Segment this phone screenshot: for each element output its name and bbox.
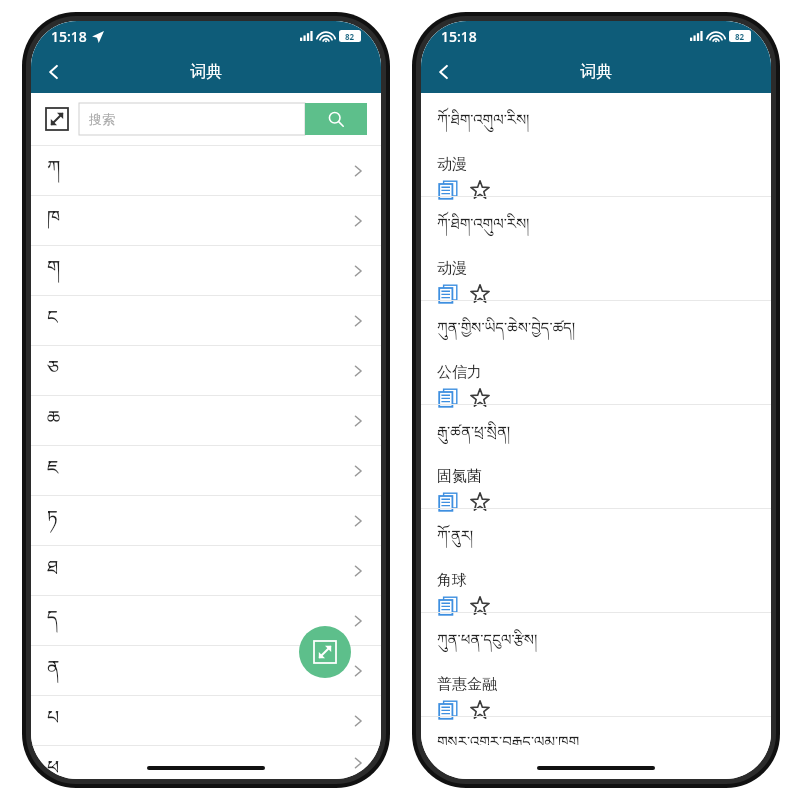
staticText: ང [47,296,58,345]
button[interactable]: Favorite [469,180,491,196]
staticText: ཇ [47,446,59,495]
staticText: ཀོ་ནུར། [437,519,474,561]
button[interactable]: Copy [437,180,459,196]
staticText: ཕ [47,746,60,779]
button[interactable]: Scan [299,626,351,678]
staticText: 普惠金融 [437,675,497,694]
staticText: 动漫 [437,155,467,174]
staticText: 固氮菌 [437,467,482,486]
staticText: ཀོ་ཐིག་འགུལ་རིས། [437,103,530,145]
staticText: 公信力 [437,363,482,382]
staticText: ཅ [47,346,60,395]
staticText: 角球 [437,571,467,590]
button[interactable]: ཏ [31,496,381,545]
button[interactable]: Copy [437,700,459,716]
staticText: ཐ [47,546,59,595]
button[interactable]: Favorite [469,596,491,612]
button[interactable]: Favorite [469,388,491,404]
button[interactable]: Copy [437,492,459,508]
button[interactable]: ཀ [31,146,381,195]
button[interactable]: Copy [437,284,459,300]
button[interactable]: ད [31,596,381,645]
staticText: ཆ [47,396,61,445]
staticText: 15:18 [441,27,477,46]
button[interactable]: རྒུ་ཚན་ཕྲ་སྲིན། [421,405,771,508]
staticText: ཏ [47,496,58,545]
button[interactable]: ཕ [31,746,381,779]
staticText: 搜索 [89,111,115,127]
button[interactable]: Favorite [469,700,491,716]
button[interactable]: Scan [45,107,69,131]
button[interactable]: ན [31,646,381,695]
staticText: ད [47,596,59,645]
button[interactable]: ཇ [31,446,381,495]
staticText: 82 [345,31,355,42]
staticText: ཀ [47,146,61,195]
button[interactable]: ཁ [31,196,381,245]
button[interactable]: Back [421,51,467,93]
staticText: ཁ [47,196,61,245]
button[interactable]: Search [305,103,367,135]
button[interactable]: ཆ [31,396,381,445]
button[interactable]: Favorite [469,492,491,508]
staticText: 词典 [190,62,222,82]
button[interactable]: ཐ [31,546,381,595]
staticText: 动漫 [437,259,467,278]
staticText: 15:18 [51,27,87,46]
button[interactable]: Favorite [469,284,491,300]
staticText: ན [47,646,60,695]
staticText: 82 [735,31,745,42]
button[interactable]: པ [31,696,381,745]
staticText: གསར་འགྱུར་བརྒྱུད་ལམ་ཁག [437,725,580,745]
button[interactable]: ཀུན་ཕན་དངུལ་རྩིས། [421,613,771,716]
button[interactable]: ཀོ་ཐིག་འགུལ་རིས། [421,197,771,300]
button[interactable]: ཀོ་ནུར། [421,509,771,612]
button[interactable]: Copy [437,388,459,404]
staticText: ག [47,246,61,295]
staticText: རྒུ་ཚན་ཕྲ་སྲིན། [437,415,511,457]
staticText: ཀུན་ཕན་དངུལ་རྩིས། [437,623,538,665]
staticText: 词典 [580,62,612,82]
staticText: ཀུན་གྱིས་ཡིད་ཆེས་བྱེད་ཚད། [437,311,576,353]
button[interactable]: 搜索 [79,103,367,135]
staticText: པ [47,696,60,745]
button[interactable]: ཀུན་གྱིས་ཡིད་ཆེས་བྱེད་ཚད། [421,301,771,404]
staticText: ཀོ་ཐིག་འགུལ་རིས། [437,207,530,249]
button[interactable]: ང [31,296,381,345]
button[interactable]: Copy [437,596,459,612]
button[interactable]: ཀོ་ཐིག་འགུལ་རིས། [421,93,771,196]
button[interactable]: Back [31,51,77,93]
button[interactable]: ཅ [31,346,381,395]
button[interactable]: ག [31,246,381,295]
